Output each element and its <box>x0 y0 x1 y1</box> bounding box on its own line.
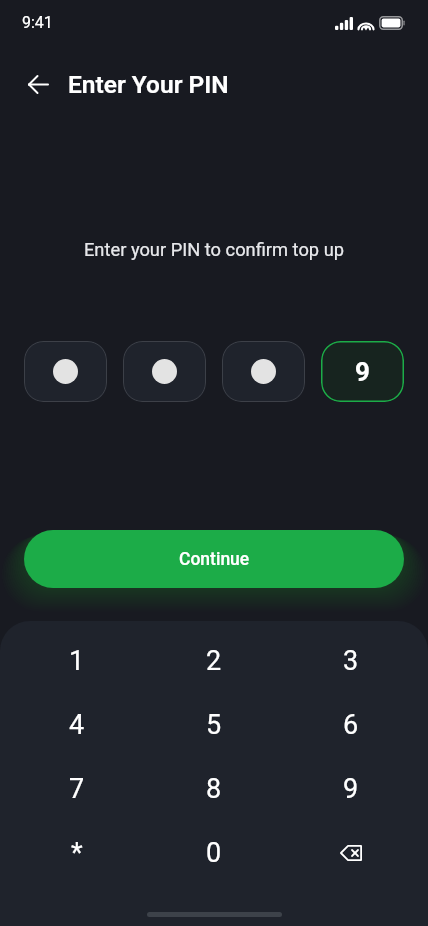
staticText: 6 <box>343 709 359 741</box>
button[interactable]: PIN digit entered <box>24 341 107 402</box>
button[interactable]: Continue <box>24 530 404 588</box>
staticText: Enter Your PIN <box>68 70 229 99</box>
button[interactable]: 7 <box>9 757 145 821</box>
button[interactable]: Back <box>16 62 60 106</box>
button[interactable]: 6 <box>282 693 419 757</box>
staticText: Enter your PIN to confirm top up <box>0 239 428 260</box>
staticText: 8 <box>206 773 222 805</box>
staticText: 9 <box>343 773 359 805</box>
button[interactable]: PIN digit entered <box>222 341 305 402</box>
staticText: 3 <box>343 645 359 677</box>
button[interactable]: 5 <box>145 693 282 757</box>
button[interactable]: 1 <box>9 629 145 693</box>
button[interactable]: 0 <box>145 821 282 885</box>
staticText: 1 <box>69 645 85 677</box>
staticText: 9 <box>355 357 370 387</box>
button[interactable]: 8 <box>145 757 282 821</box>
button[interactable]: 9 <box>282 757 419 821</box>
button[interactable]: Backspace <box>282 821 419 885</box>
staticText: Continue <box>179 549 250 570</box>
staticText: 2 <box>206 645 222 677</box>
button[interactable]: 4 <box>9 693 145 757</box>
button[interactable]: 2 <box>145 629 282 693</box>
staticText: 7 <box>69 773 85 805</box>
button[interactable]: PIN digit entered <box>123 341 206 402</box>
staticText: 0 <box>206 837 222 869</box>
staticText: 4 <box>69 709 85 741</box>
staticText: * <box>71 837 83 869</box>
button[interactable]: * <box>9 821 145 885</box>
staticText: 5 <box>206 709 222 741</box>
staticText: 9:41 <box>22 13 53 32</box>
button[interactable]: 3 <box>282 629 419 693</box>
button[interactable]: 9 <box>321 341 404 402</box>
